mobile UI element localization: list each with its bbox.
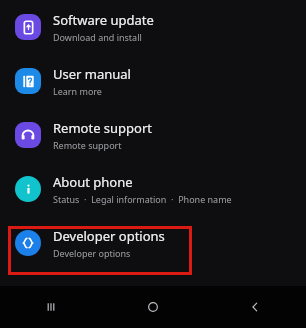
staticText: Developer options [53,227,165,245]
staticText: Learn more [53,85,102,97]
button[interactable]: Recent apps [0,286,102,328]
button[interactable]: Remote support [0,108,306,162]
button[interactable]: Developer options [0,216,306,270]
staticText: Developer options [53,247,131,259]
staticText: Remote support [53,139,122,151]
button[interactable]: About phone [0,162,306,216]
staticText: About phone [53,173,133,191]
button[interactable]: User manual [0,54,306,108]
staticText: Download and install [53,31,142,43]
button[interactable]: Back [204,286,306,328]
staticText: Status · Legal information · Phone name [53,193,232,205]
staticText: Software update [53,11,154,29]
button[interactable]: Home [102,286,204,328]
staticText: Remote support [53,119,153,137]
button[interactable]: Software update [0,0,306,54]
staticText: User manual [53,65,131,83]
